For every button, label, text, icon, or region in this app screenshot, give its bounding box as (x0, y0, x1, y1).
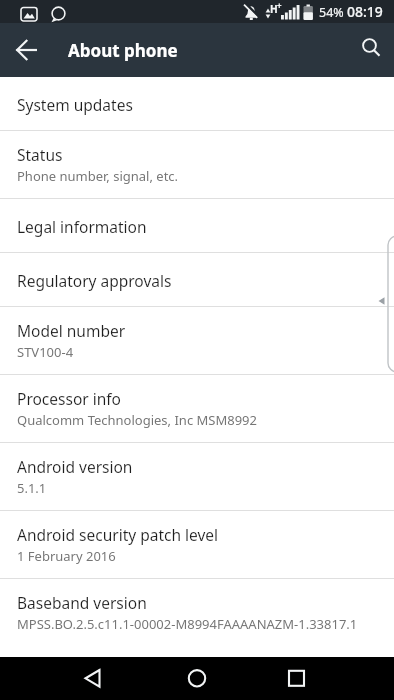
staticText: 08:19 (347, 2, 383, 21)
staticText: Android version (17, 456, 133, 477)
staticText: Status (17, 144, 63, 165)
staticText: 54% (319, 4, 344, 21)
staticText: System updates (17, 94, 133, 115)
button[interactable]: Status (0, 131, 394, 199)
staticText: Android security patch level (17, 524, 219, 545)
button[interactable]: Android version (0, 443, 394, 511)
button[interactable]: Legal information (0, 199, 394, 253)
staticText: + (277, 0, 282, 11)
staticText: MPSS.BO.2.5.c11.1-00002-M8994FAAAANAZM-1… (17, 615, 358, 633)
staticText: 5.1.1 (17, 479, 47, 497)
staticText: About phone (68, 39, 178, 62)
staticText: Model number (17, 320, 126, 341)
button[interactable]: Android security patch level (0, 511, 394, 579)
staticText: Processor info (17, 388, 121, 409)
button[interactable] (173, 657, 221, 700)
staticText: Legal information (17, 216, 147, 237)
button[interactable]: Model number (0, 307, 394, 375)
button[interactable]: Baseband version (0, 579, 394, 647)
staticText: Phone number, signal, etc. (17, 167, 179, 185)
staticText: Qualcomm Technologies, Inc MSM8992 (17, 411, 257, 429)
button[interactable]: Processor info (0, 375, 394, 443)
button[interactable] (350, 28, 394, 72)
staticText: 1 February 2016 (17, 547, 116, 565)
button[interactable]: Regulatory approvals (0, 253, 394, 307)
button[interactable] (272, 657, 320, 700)
staticText: Regulatory approvals (17, 270, 172, 291)
staticText: Baseband version (17, 592, 147, 613)
staticText: H (270, 2, 278, 16)
button[interactable] (75, 657, 123, 700)
button[interactable]: System updates (0, 77, 394, 131)
button[interactable] (8, 41, 46, 79)
staticText: STV100-4 (17, 343, 74, 361)
